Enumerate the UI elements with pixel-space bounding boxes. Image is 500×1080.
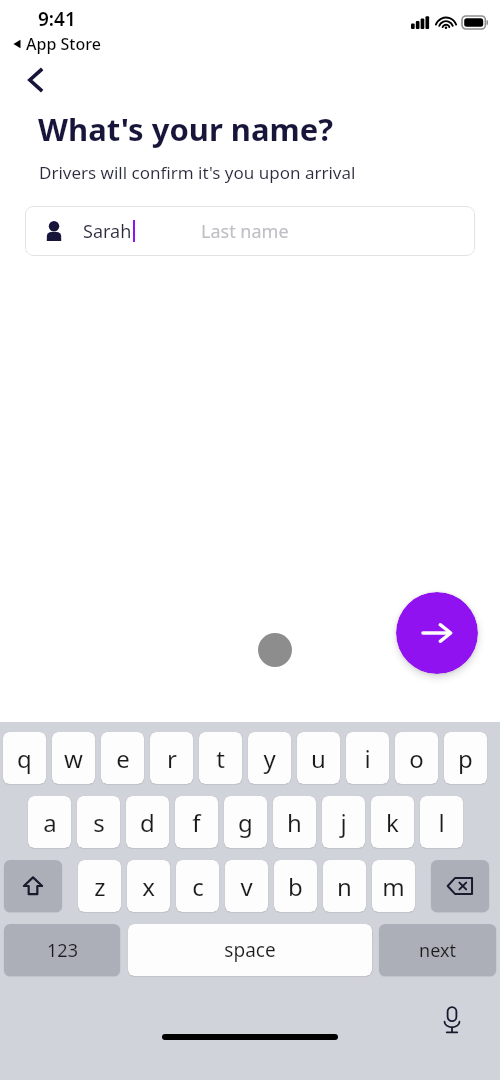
staticText: 9:41 [38,6,76,32]
button[interactable]: g [224,796,267,848]
button[interactable]: y [248,732,291,784]
button[interactable]: o [395,732,438,784]
staticText: j [340,806,347,839]
button[interactable]: m [372,860,415,912]
staticText: q [17,742,32,775]
staticText: What's your name? [38,108,334,150]
staticText: x [142,870,155,903]
staticText: v [240,870,253,903]
staticText: h [287,806,302,839]
staticText: r [167,742,177,775]
button[interactable]: j [322,796,365,848]
button[interactable]: p [444,732,487,784]
button[interactable]: d [126,796,169,848]
staticText: s [93,806,105,839]
staticText: Sarah [83,219,132,244]
staticText: e [116,742,130,775]
staticText: t [216,742,225,775]
staticText: y [263,742,276,775]
staticText: g [238,806,253,839]
staticText: w [64,742,83,775]
button[interactable]: Dictate [434,1002,470,1038]
staticText: App Store [26,33,101,55]
staticText: l [438,806,445,839]
staticText: f [192,806,201,839]
staticText: i [364,742,371,775]
button[interactable]: s [77,796,120,848]
staticText: k [386,806,399,839]
staticText: Last name [201,219,289,244]
staticText: next [419,938,456,963]
button[interactable]: f [175,796,218,848]
button[interactable]: next [379,924,496,976]
staticText: a [43,806,57,839]
staticText: Drivers will confirm it's you upon arriv… [39,161,356,184]
button[interactable]: space [128,924,372,976]
staticText: 123 [47,938,78,963]
staticText: m [382,870,405,903]
staticText: p [458,742,473,775]
staticText: n [337,870,352,903]
button[interactable]: Backspace [431,860,489,912]
button[interactable]: q [3,732,46,784]
button[interactable]: n [323,860,366,912]
staticText: z [94,870,106,903]
button[interactable]: t [199,732,242,784]
button[interactable]: k [371,796,414,848]
button[interactable]: v [225,860,268,912]
button[interactable]: a [28,796,71,848]
button[interactable]: Shift [4,860,62,912]
button[interactable]: Continue [396,592,478,674]
staticText: c [192,870,204,903]
button[interactable]: w [52,732,95,784]
button[interactable]: z [78,860,121,912]
button[interactable]: h [273,796,316,848]
button[interactable]: Back [14,58,58,102]
button[interactable]: x [127,860,170,912]
staticText: d [140,806,155,839]
button[interactable]: Sarah [25,206,475,256]
staticText: u [311,742,326,775]
button[interactable]: b [274,860,317,912]
staticText: space [224,937,276,963]
button[interactable]: r [150,732,193,784]
button[interactable]: e [101,732,144,784]
button[interactable]: l [420,796,463,848]
button[interactable]: 123 [4,924,120,976]
staticText: b [288,870,303,903]
button[interactable]: c [176,860,219,912]
button[interactable]: i [346,732,389,784]
staticText: o [409,742,424,775]
button[interactable]: u [297,732,340,784]
